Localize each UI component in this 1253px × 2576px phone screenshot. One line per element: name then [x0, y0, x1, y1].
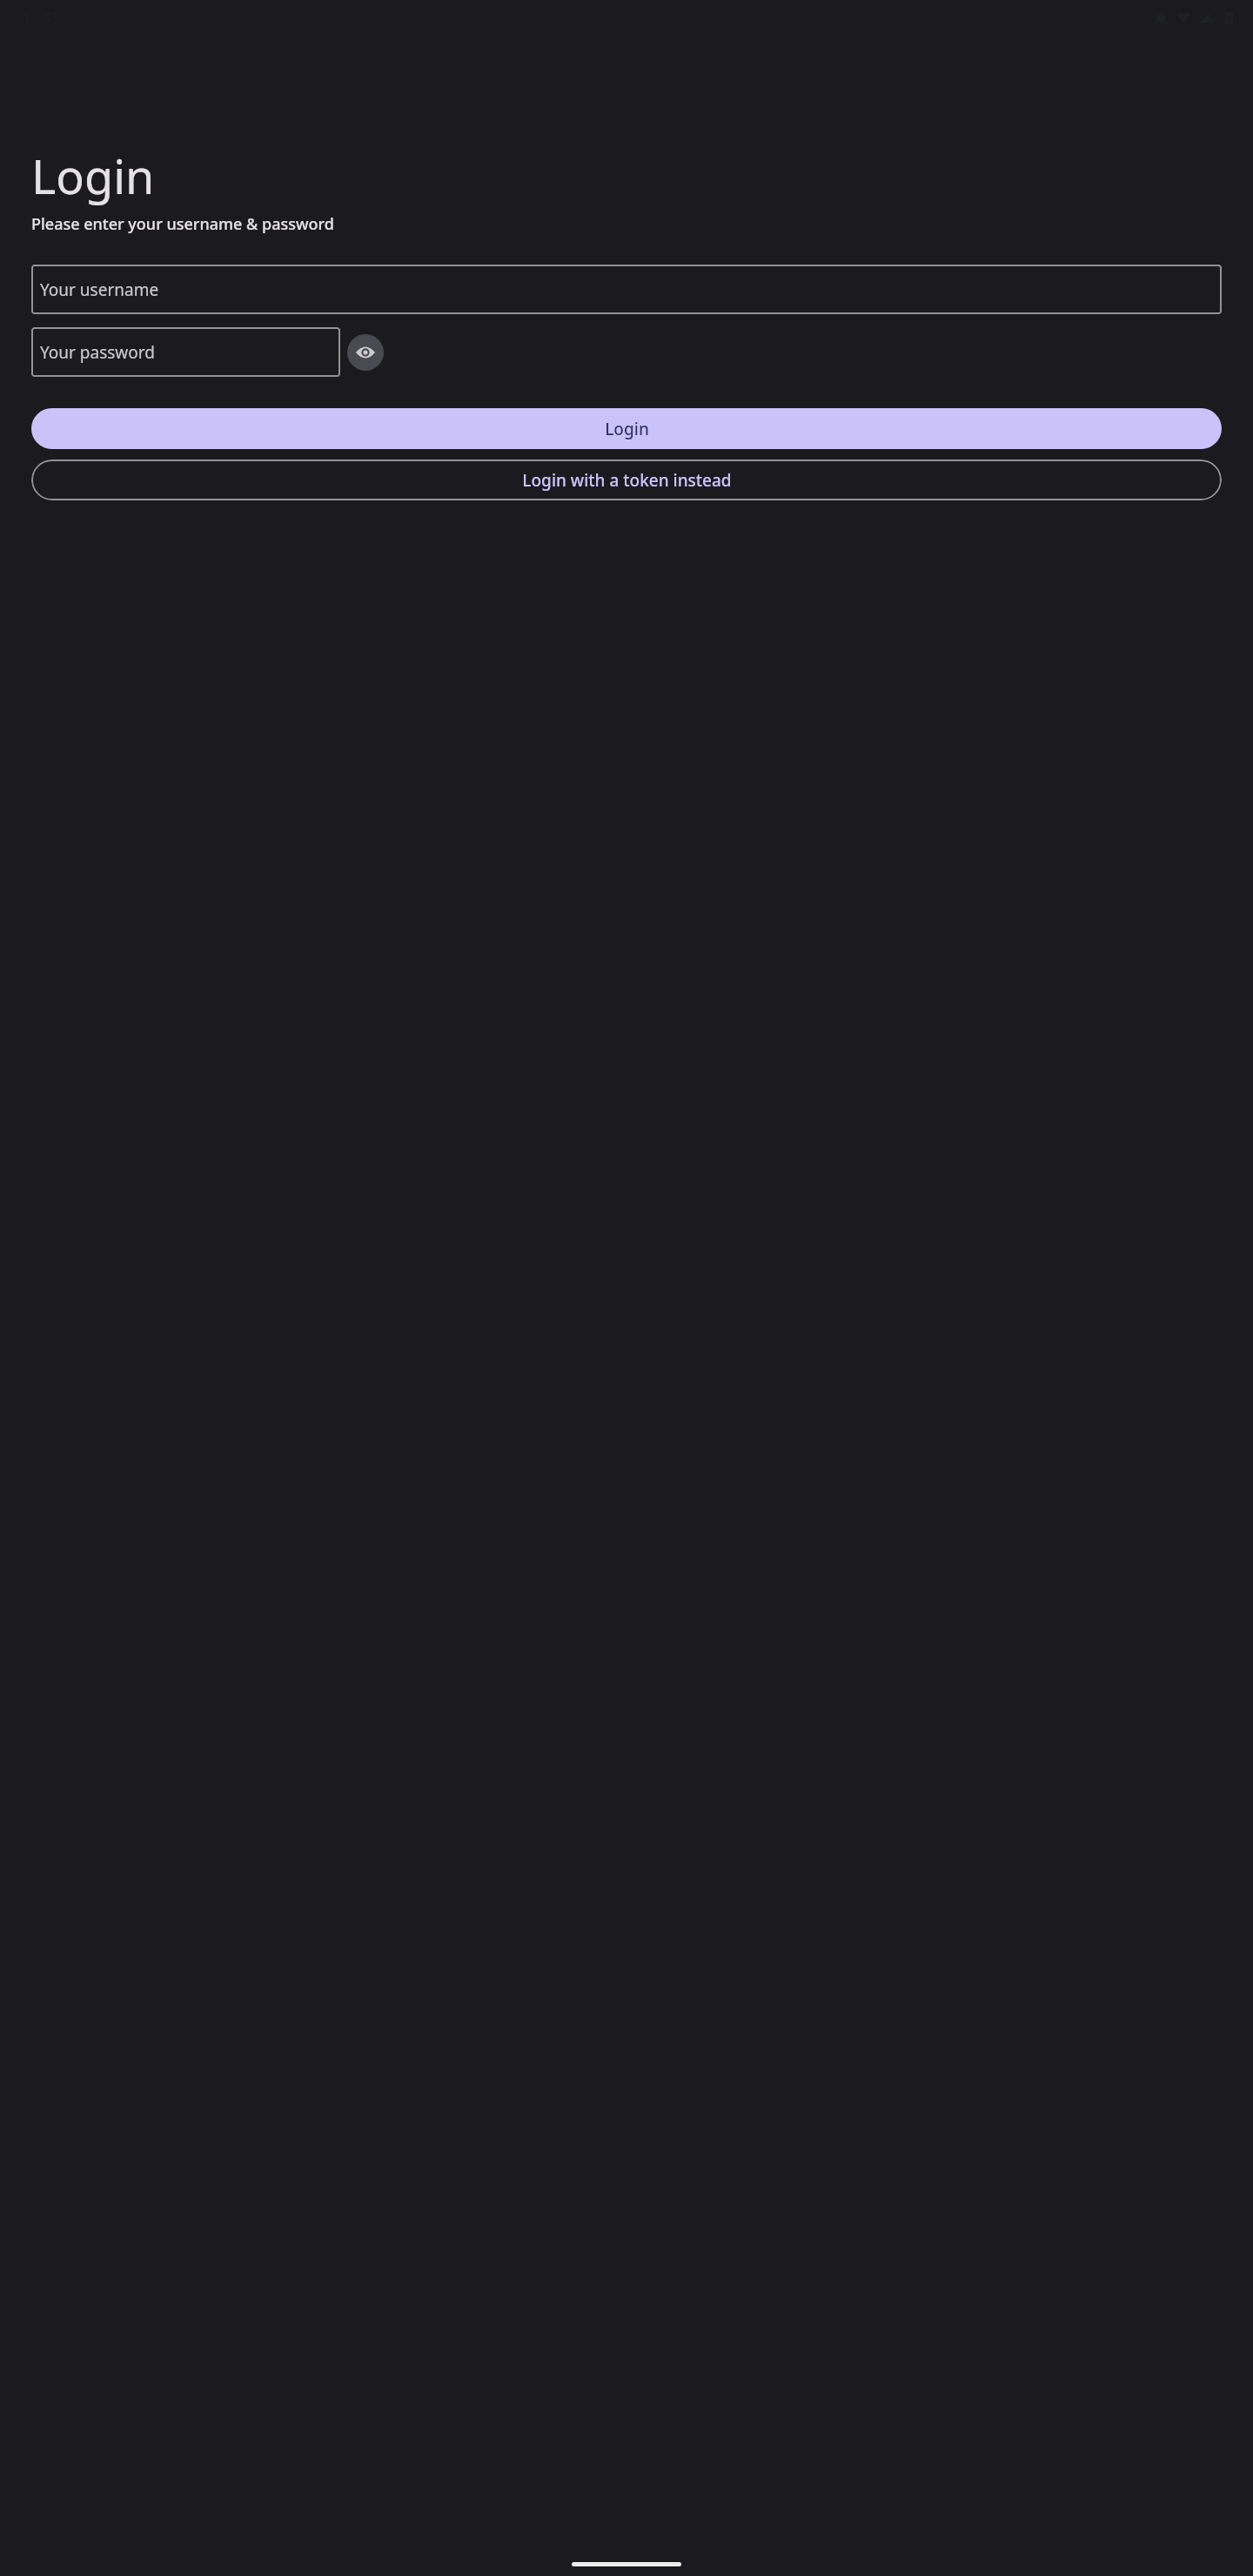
staticText: Login with a token instead [522, 469, 732, 492]
staticText: Your username [40, 278, 159, 301]
button[interactable]: Show password [347, 334, 384, 371]
button[interactable]: Your password [31, 327, 340, 377]
staticText: Login [31, 144, 155, 208]
button[interactable]: Your username [31, 265, 1222, 314]
staticText: Please enter your username & password [31, 213, 334, 235]
button[interactable]: Login with a token instead [31, 460, 1222, 500]
staticText: Your password [40, 341, 155, 364]
staticText: Login [605, 418, 649, 440]
button[interactable]: Login [31, 408, 1222, 449]
